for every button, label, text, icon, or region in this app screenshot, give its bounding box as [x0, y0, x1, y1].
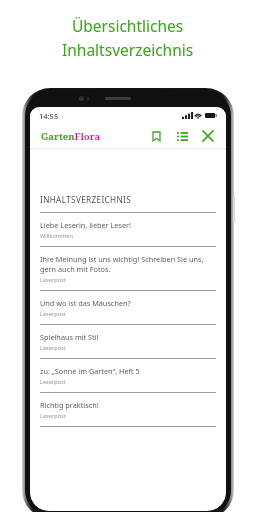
staticText: Leserpost — [40, 378, 66, 386]
staticText: Übersichtliches — [72, 15, 184, 36]
button[interactable]: Lesezeichen — [147, 127, 165, 145]
staticText: Inhaltsverzeichnis — [62, 39, 194, 60]
button[interactable]: Und wo ist das Mäuschen? — [40, 291, 216, 324]
button[interactable]: zu: „Sonne im Garten“, Heft 5 — [40, 359, 216, 392]
button[interactable]: Schließen — [199, 127, 217, 145]
staticText: Leserpost — [40, 310, 66, 318]
staticText: Willkommen — [40, 232, 73, 240]
staticText: Leserpost — [40, 276, 66, 284]
staticText: Liebe Leserin, lieber Leser! — [40, 220, 132, 230]
staticText: Und wo ist das Mäuschen? — [40, 298, 131, 308]
button[interactable]: Spielhaus mit Stil — [40, 325, 216, 358]
staticText: GartenFlora — [41, 130, 101, 143]
staticText: Leserpost — [40, 344, 66, 352]
button[interactable]: Liebe Leserin, lieber Leser! — [40, 213, 216, 246]
button[interactable]: Ihre Meinung ist uns wichtig! Schreiben … — [40, 247, 216, 290]
staticText: Ihre Meinung ist uns wichtig! Schreiben … — [40, 254, 216, 274]
button[interactable]: Richtig praktisch! — [40, 393, 216, 426]
staticText: Spielhaus mit Stil — [40, 332, 99, 342]
staticText: Leserpost — [40, 412, 66, 420]
button[interactable]: Inhaltsverzeichnis — [173, 127, 191, 145]
staticText: 14:55 — [39, 111, 59, 121]
staticText: Richtig praktisch! — [40, 400, 99, 410]
staticText: INHALTSVERZEICHNIS — [40, 194, 132, 205]
staticText: zu: „Sonne im Garten“, Heft 5 — [40, 366, 140, 376]
